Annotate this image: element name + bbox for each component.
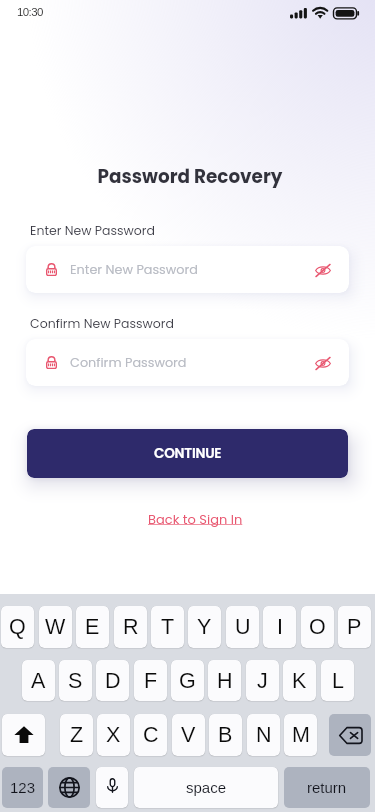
button[interactable]: Back to Sign In bbox=[148, 510, 243, 528]
staticText: J bbox=[257, 669, 268, 693]
button[interactable]: D bbox=[96, 660, 129, 701]
button[interactable]: Shift bbox=[2, 714, 45, 756]
staticText: W bbox=[45, 615, 66, 639]
button[interactable]: Backspace bbox=[329, 714, 371, 756]
button[interactable]: Change keyboard language bbox=[48, 767, 90, 808]
staticText: H bbox=[217, 669, 233, 693]
staticText: C bbox=[143, 723, 159, 747]
staticText: O bbox=[309, 615, 326, 639]
button[interactable]: Confirm Password bbox=[26, 339, 349, 386]
button[interactable]: Dictation bbox=[96, 767, 128, 808]
button[interactable]: Z bbox=[60, 714, 93, 756]
staticText: T bbox=[161, 615, 175, 639]
button[interactable]: X bbox=[97, 714, 130, 756]
button[interactable]: S bbox=[59, 660, 92, 701]
staticText: I bbox=[277, 615, 283, 639]
button[interactable]: C bbox=[134, 714, 167, 756]
staticText: L bbox=[332, 669, 344, 693]
staticText: Y bbox=[197, 615, 212, 639]
button[interactable]: L bbox=[321, 660, 354, 701]
button[interactable]: I bbox=[263, 606, 296, 648]
staticText: Z bbox=[70, 723, 84, 747]
staticText: B bbox=[218, 723, 233, 747]
staticText: return bbox=[307, 779, 347, 796]
staticText: Enter New Password bbox=[70, 261, 313, 279]
staticText: N bbox=[256, 723, 272, 747]
button[interactable]: M bbox=[284, 714, 317, 756]
staticText: E bbox=[85, 615, 100, 639]
staticText: CONTINUE bbox=[154, 444, 222, 463]
staticText: Password Recovery bbox=[5, 164, 375, 190]
staticText: Confirm New Password bbox=[30, 315, 174, 332]
button[interactable]: Y bbox=[188, 606, 221, 648]
staticText: 10:30 bbox=[17, 6, 43, 19]
button[interactable]: W bbox=[39, 606, 72, 648]
staticText: F bbox=[144, 669, 158, 693]
staticText: space bbox=[186, 779, 227, 796]
button[interactable]: N bbox=[247, 714, 280, 756]
staticText: K bbox=[292, 669, 307, 693]
button[interactable]: R bbox=[114, 606, 147, 648]
button[interactable]: return bbox=[284, 767, 370, 808]
button[interactable]: U bbox=[226, 606, 259, 648]
staticText: Confirm Password bbox=[70, 354, 313, 372]
button[interactable]: space bbox=[134, 767, 278, 808]
staticText: 123 bbox=[10, 779, 36, 796]
staticText: R bbox=[123, 615, 139, 639]
staticText: G bbox=[179, 669, 196, 693]
staticText: M bbox=[292, 723, 310, 747]
button[interactable]: T bbox=[151, 606, 184, 648]
button[interactable]: Show password bbox=[313, 353, 333, 373]
staticText: Q bbox=[9, 615, 26, 639]
button[interactable]: K bbox=[283, 660, 316, 701]
button[interactable]: A bbox=[22, 660, 55, 701]
button[interactable]: G bbox=[171, 660, 204, 701]
button[interactable]: B bbox=[209, 714, 242, 756]
staticText: D bbox=[105, 669, 121, 693]
button[interactable]: P bbox=[338, 606, 371, 648]
button[interactable]: 123 bbox=[2, 767, 43, 808]
staticText: P bbox=[347, 615, 362, 639]
button[interactable]: Enter New Password bbox=[26, 246, 349, 293]
staticText: Enter New Password bbox=[30, 222, 155, 239]
button[interactable]: CONTINUE bbox=[27, 429, 348, 478]
button[interactable]: F bbox=[134, 660, 167, 701]
staticText: U bbox=[235, 615, 251, 639]
button[interactable]: Show password bbox=[313, 260, 333, 280]
staticText: V bbox=[181, 723, 196, 747]
staticText: S bbox=[68, 669, 83, 693]
button[interactable]: E bbox=[76, 606, 109, 648]
button[interactable]: Q bbox=[1, 606, 34, 648]
button[interactable]: J bbox=[246, 660, 279, 701]
button[interactable]: O bbox=[301, 606, 334, 648]
button[interactable]: H bbox=[208, 660, 241, 701]
staticText: X bbox=[106, 723, 121, 747]
button[interactable]: V bbox=[172, 714, 205, 756]
staticText: A bbox=[31, 669, 46, 693]
